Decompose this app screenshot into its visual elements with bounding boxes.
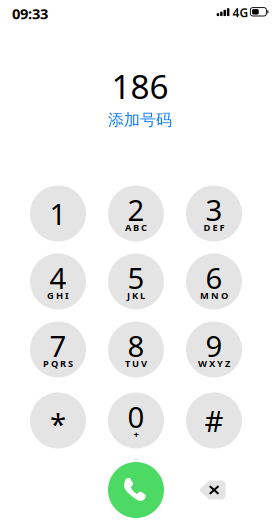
staticText: J K L — [127, 289, 145, 302]
button[interactable]: 3 — [176, 175, 252, 251]
button[interactable]: Call — [108, 462, 164, 518]
staticText: * — [50, 404, 66, 443]
button[interactable]: 8 — [98, 311, 174, 387]
staticText: W X Y Z — [198, 357, 230, 370]
staticText: 5 — [127, 258, 144, 297]
staticText: D E F — [203, 221, 224, 234]
staticText: 4G — [233, 5, 249, 20]
button[interactable]: 5 — [98, 243, 174, 319]
button[interactable]: 0 — [98, 382, 174, 458]
staticText: 6 — [205, 258, 222, 297]
staticText: P Q R S — [43, 357, 73, 370]
staticText: 0 — [127, 397, 144, 436]
staticText: 1 — [49, 194, 66, 233]
button[interactable]: 6 — [176, 243, 252, 319]
staticText: 09:33 — [12, 4, 48, 23]
button[interactable]: * — [20, 382, 96, 458]
staticText: 4 — [49, 258, 66, 297]
button[interactable]: # — [176, 382, 252, 458]
staticText: 3 — [205, 190, 222, 229]
staticText: T U V — [125, 357, 147, 370]
staticText: + — [133, 428, 138, 441]
staticText: 8 — [127, 326, 144, 365]
button[interactable]: 2 — [98, 175, 174, 251]
staticText: 添加号码 — [108, 110, 172, 130]
staticText: 2 — [127, 190, 144, 229]
staticText: M N O — [200, 289, 228, 302]
button[interactable]: 4 — [20, 243, 96, 319]
staticText: G H I — [47, 289, 69, 302]
staticText: 7 — [49, 326, 66, 365]
staticText: A B C — [125, 221, 147, 234]
staticText: 186 — [111, 64, 168, 108]
button[interactable]: 1 — [20, 175, 96, 251]
button[interactable]: 9 — [176, 311, 252, 387]
button[interactable]: 7 — [20, 311, 96, 387]
button[interactable]: 添加号码 — [102, 108, 178, 132]
staticText: 9 — [205, 326, 222, 365]
staticText: # — [204, 401, 223, 440]
button[interactable]: Delete — [184, 462, 240, 518]
